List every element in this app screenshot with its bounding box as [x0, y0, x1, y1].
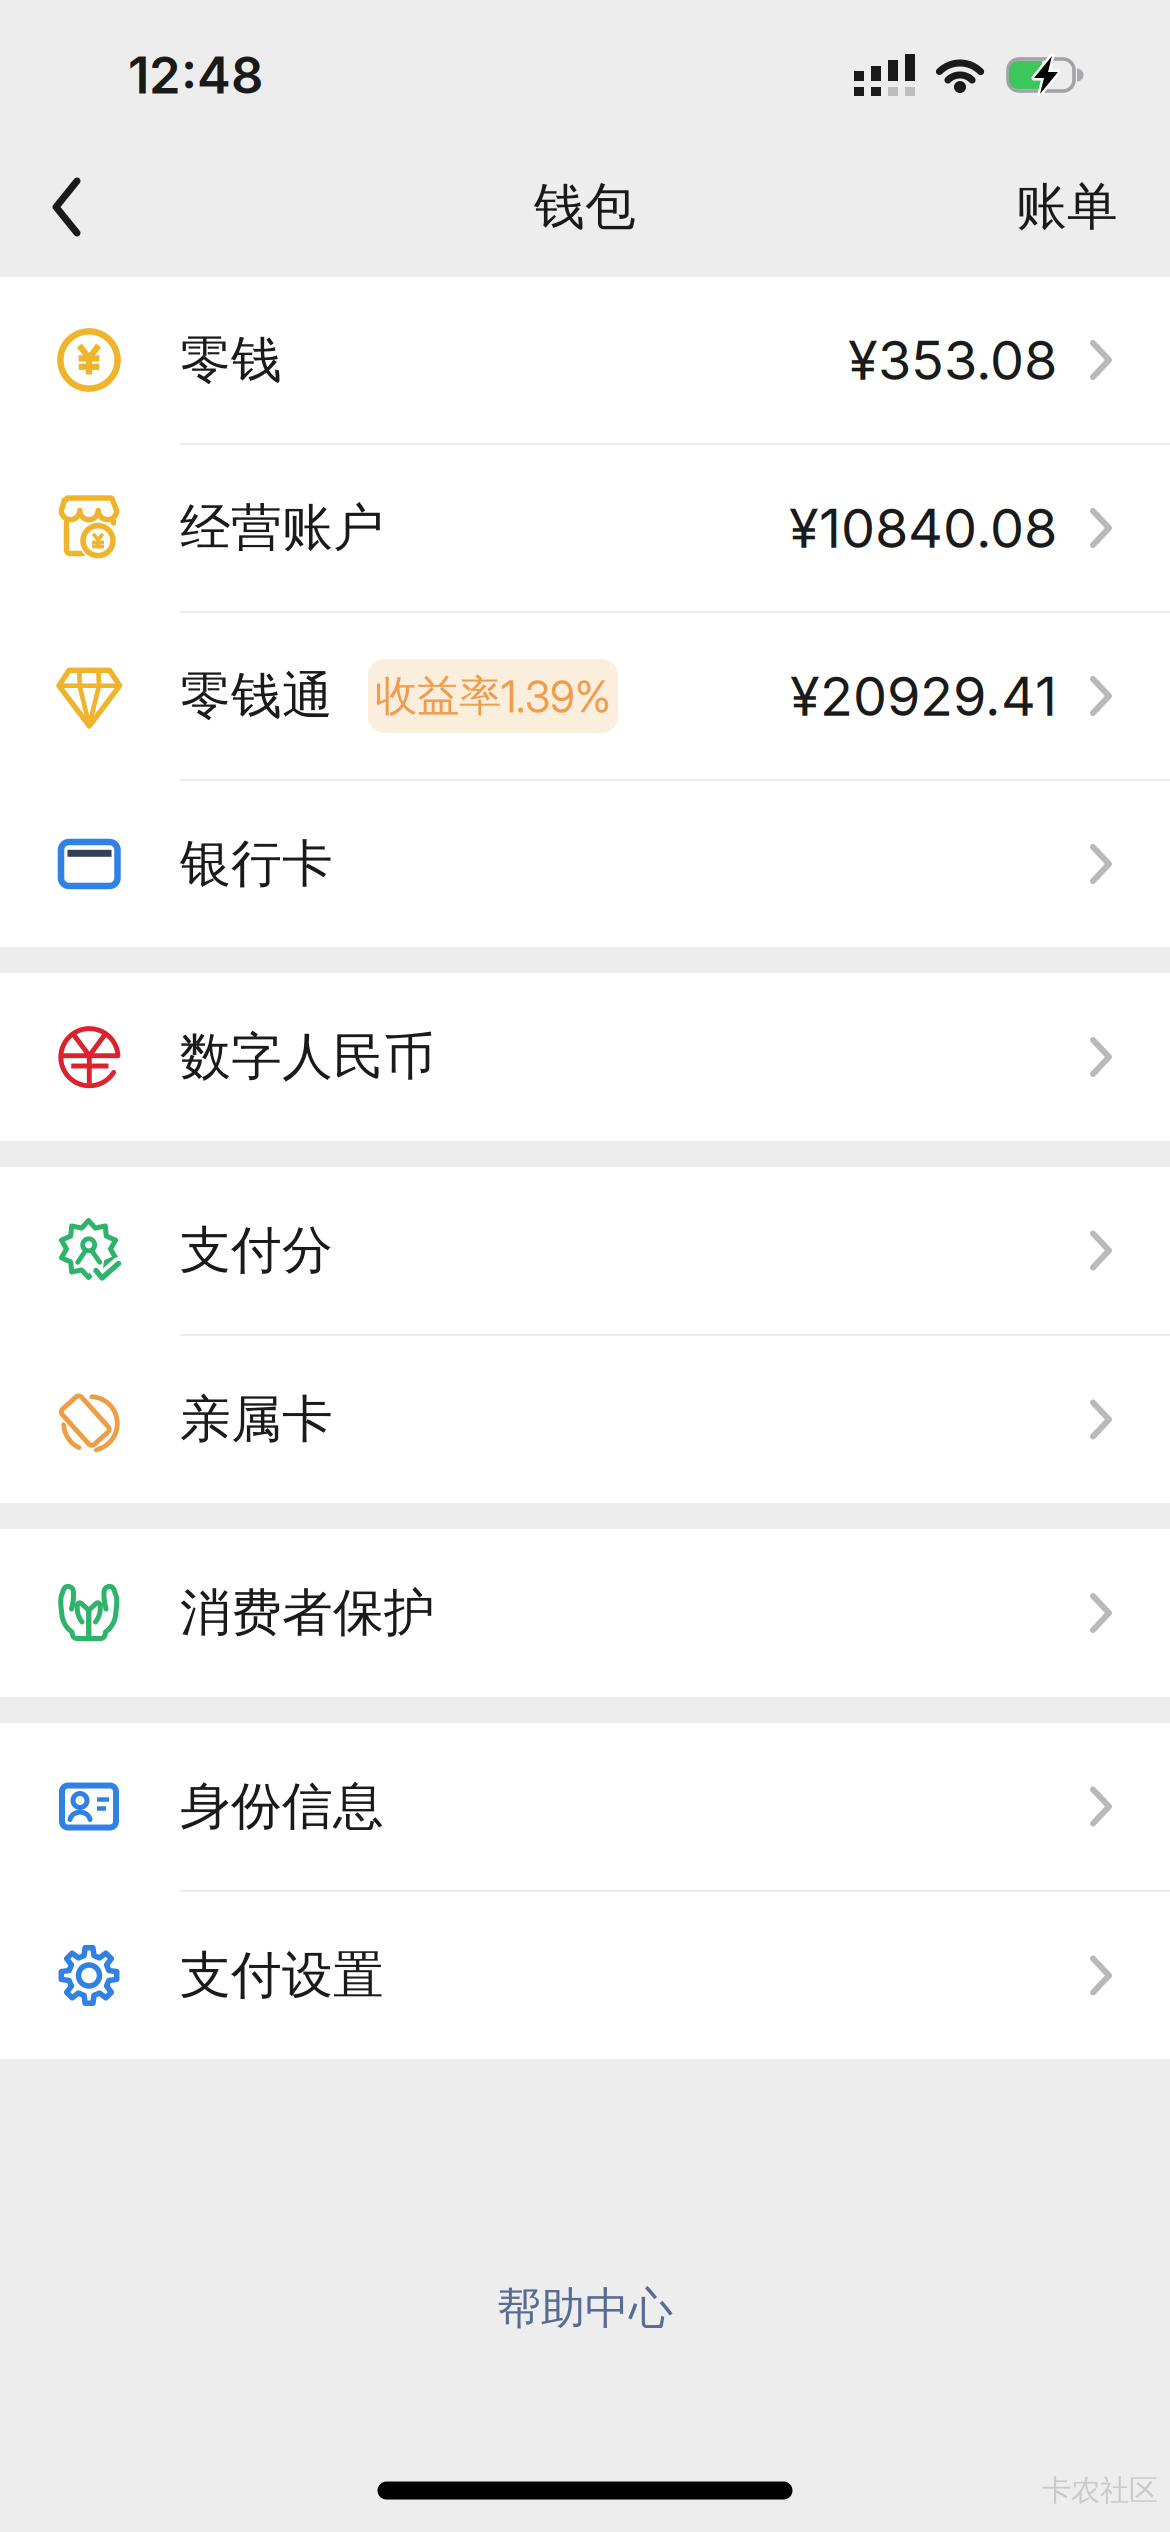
- button[interactable]: 亲属卡: [0, 1336, 1170, 1503]
- button[interactable]: 支付分: [0, 1167, 1170, 1334]
- button[interactable]: 身份信息: [0, 1723, 1170, 1890]
- staticText: 帮助中心: [497, 2281, 673, 2336]
- staticText: ¥353.08: [848, 327, 1057, 393]
- button[interactable]: 经营账户: [0, 445, 1170, 611]
- staticText: 银行卡: [180, 832, 333, 896]
- staticText: 身份信息: [180, 1775, 384, 1838]
- button[interactable]: 支付设置: [0, 1892, 1170, 2059]
- staticText: 消费者保护: [180, 1581, 435, 1645]
- staticText: 零钱: [180, 328, 282, 392]
- button[interactable]: 账单: [1016, 175, 1118, 239]
- button[interactable]: 帮助中心: [497, 2281, 673, 2336]
- button[interactable]: 银行卡: [0, 781, 1170, 947]
- staticText: 支付设置: [180, 1944, 384, 2007]
- staticText: 12:48: [128, 44, 263, 106]
- staticText: 经营账户: [180, 496, 384, 560]
- staticText: 卡农社区: [1042, 2472, 1158, 2509]
- staticText: 收益率1.39%: [375, 669, 611, 723]
- button[interactable]: 零钱通: [0, 613, 1170, 779]
- button[interactable]: 零钱: [0, 277, 1170, 443]
- staticText: ¥10840.08: [789, 495, 1057, 561]
- staticText: 数字人民币: [180, 1025, 435, 1089]
- staticText: 亲属卡: [180, 1388, 333, 1451]
- button[interactable]: 数字人民币: [0, 973, 1170, 1141]
- staticText: ¥20929.41: [790, 663, 1057, 729]
- staticText: 账单: [1016, 175, 1118, 239]
- button[interactable]: 消费者保护: [0, 1529, 1170, 1697]
- staticText: 钱包: [534, 175, 636, 239]
- staticText: 零钱通: [180, 664, 333, 728]
- staticText: 支付分: [180, 1219, 333, 1282]
- button[interactable]: 返回: [52, 178, 81, 236]
